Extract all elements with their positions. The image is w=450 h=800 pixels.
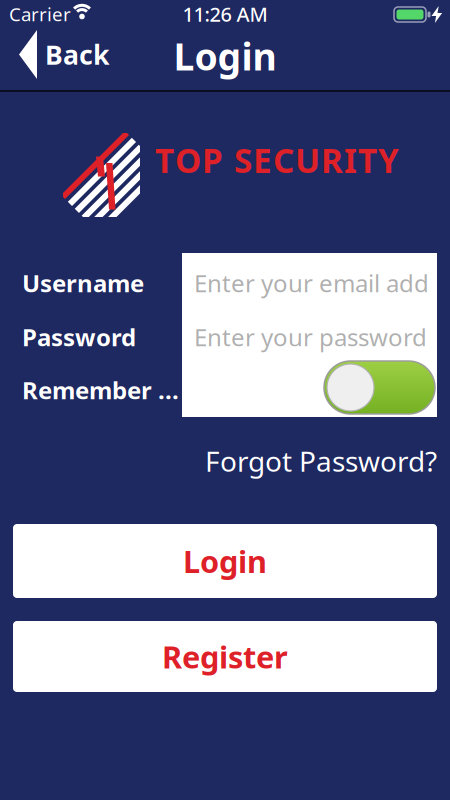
- staticText: Register: [162, 636, 288, 677]
- staticText: 11:26 AM: [182, 1, 267, 27]
- staticText: Enter your email add: [194, 267, 429, 299]
- staticText: Password: [22, 321, 136, 353]
- staticText: Remember ...: [22, 374, 179, 406]
- button[interactable]: Remember Me: [324, 361, 435, 414]
- button[interactable]: Enter your password: [194, 310, 437, 364]
- staticText: Login: [183, 541, 267, 581]
- button[interactable]: Forgot Password?: [137, 444, 437, 478]
- staticText: Username: [22, 267, 144, 299]
- staticText: Carrier: [9, 2, 71, 26]
- button[interactable]: Enter your email add: [194, 256, 437, 310]
- staticText: TOP SECURITY: [155, 138, 399, 182]
- button[interactable]: Register: [13, 621, 437, 692]
- staticText: Forgot Password?: [205, 442, 437, 480]
- staticText: Enter your password: [194, 321, 427, 353]
- button[interactable]: Login: [13, 524, 437, 598]
- button[interactable]: Back: [19, 30, 110, 79]
- staticText: Back: [45, 37, 110, 72]
- staticText: Login: [173, 31, 276, 81]
